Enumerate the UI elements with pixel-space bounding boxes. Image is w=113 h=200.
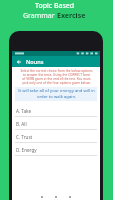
staticText: A. Take	[16, 108, 32, 114]
button[interactable]: C. Trust	[12, 130, 100, 143]
button[interactable]: B. All	[12, 117, 100, 130]
staticText: Nouns	[26, 58, 44, 66]
staticText: Exercise	[57, 11, 86, 21]
button[interactable]: D. Energy	[12, 143, 100, 156]
button[interactable]: A. Take	[12, 104, 100, 117]
staticText: Grammar	[23, 11, 57, 21]
staticText: B. All	[16, 121, 27, 127]
staticText: Select the correct choice from the below…	[20, 69, 93, 85]
staticText: It will take all of your energy and will…	[18, 88, 95, 100]
staticText: D. Energy	[16, 147, 37, 153]
button[interactable]: Back	[12, 56, 26, 67]
staticText: C. Trust	[16, 134, 33, 140]
staticText: Topic Based	[35, 1, 75, 11]
